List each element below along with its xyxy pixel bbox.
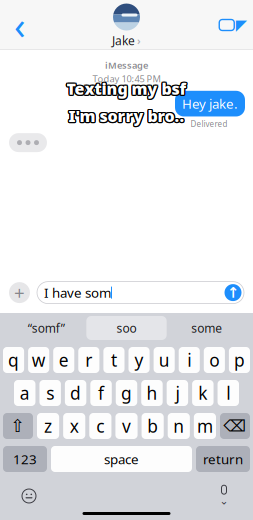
- staticText: o: [209, 348, 219, 371]
- button[interactable]: z: [37, 413, 59, 439]
- staticText: f: [98, 381, 104, 404]
- staticText: x: [70, 414, 79, 437]
- button[interactable]: Shift: [3, 413, 33, 439]
- staticText: I'm sorry bro..: [69, 104, 185, 125]
- staticText: soo: [116, 320, 136, 336]
- staticText: Hey jake.: [182, 95, 238, 112]
- button[interactable]: k: [192, 380, 213, 406]
- button[interactable]: w: [28, 347, 49, 373]
- button[interactable]: 123: [3, 446, 47, 472]
- staticText: ◤: [236, 17, 247, 33]
- button[interactable]: x: [63, 413, 85, 439]
- button[interactable]: FaceTime video call: [213, 3, 253, 47]
- staticText: Today 10:45 PM: [92, 72, 160, 85]
- staticText: I'm sorry bro..: [70, 105, 186, 126]
- staticText: Texting my bsf: [68, 78, 188, 99]
- staticText: m: [197, 414, 213, 437]
- staticText: +: [14, 280, 25, 305]
- button[interactable]: “somf”: [6, 316, 86, 340]
- staticText: Texting my bsf: [65, 77, 185, 98]
- staticText: k: [198, 381, 207, 404]
- button[interactable]: j: [167, 380, 188, 406]
- staticText: r: [85, 348, 92, 371]
- staticText: I have som: [44, 284, 111, 301]
- button[interactable]: o: [204, 347, 225, 373]
- staticText: n: [173, 414, 184, 437]
- staticText: l: [226, 381, 230, 404]
- staticText: I'm sorry bro..: [68, 105, 184, 126]
- button[interactable]: t: [103, 347, 124, 373]
- staticText: space: [104, 450, 139, 468]
- staticText: w: [32, 348, 46, 371]
- button[interactable]: some: [167, 316, 247, 340]
- staticText: I'm sorry bro..: [69, 106, 185, 127]
- button[interactable]: n: [168, 413, 190, 439]
- staticText: p: [234, 348, 245, 371]
- staticText: I'm sorry bro..: [67, 106, 183, 127]
- staticText: s: [46, 381, 54, 404]
- button[interactable]: q: [3, 347, 24, 373]
- button[interactable]: d: [65, 380, 86, 406]
- button[interactable]: f: [90, 380, 112, 406]
- button[interactable]: u: [154, 347, 175, 373]
- button[interactable]: m: [194, 413, 216, 439]
- staticText: iMessage: [105, 59, 148, 71]
- staticText: j: [175, 381, 179, 404]
- staticText: Texting my bsf: [66, 78, 186, 99]
- button[interactable]: Message text field: [37, 282, 244, 304]
- staticText: “somf”: [28, 320, 65, 336]
- button[interactable]: soo: [86, 316, 167, 340]
- staticText: t: [111, 348, 117, 371]
- button[interactable]: r: [78, 347, 99, 373]
- button[interactable]: Add attachment: [9, 280, 30, 305]
- staticText: ›: [137, 33, 141, 48]
- staticText: z: [44, 414, 52, 437]
- button[interactable]: l: [218, 380, 239, 406]
- staticText: some: [191, 320, 222, 336]
- button[interactable]: p: [229, 347, 250, 373]
- button[interactable]: g: [116, 380, 137, 406]
- staticText: g: [121, 381, 132, 404]
- staticText: Texting my bsf: [67, 79, 187, 100]
- staticText: Texting my bsf: [65, 79, 185, 100]
- staticText: q: [8, 348, 19, 371]
- staticText: Texting my bsf: [66, 77, 186, 98]
- staticText: I'm sorry bro..: [68, 104, 184, 125]
- button[interactable]: h: [141, 380, 163, 406]
- button[interactable]: i: [179, 347, 200, 373]
- button[interactable]: a: [14, 380, 35, 406]
- button[interactable]: e: [53, 347, 74, 373]
- staticText: a: [20, 381, 30, 404]
- button[interactable]: s: [39, 380, 61, 406]
- staticText: ‹: [14, 0, 26, 50]
- staticText: i: [187, 348, 191, 371]
- staticText: d: [70, 381, 81, 404]
- button[interactable]: v: [115, 413, 137, 439]
- staticText: ⌄: [219, 495, 228, 507]
- button[interactable]: Emoji keyboard: [12, 481, 46, 511]
- staticText: ⇧: [10, 416, 25, 436]
- staticText: I'm sorry bro..: [67, 105, 183, 126]
- staticText: Jake: [112, 32, 135, 48]
- staticText: h: [146, 381, 157, 404]
- staticText: Texting my bsf: [67, 77, 187, 98]
- button[interactable]: return: [196, 446, 250, 472]
- staticText: return: [203, 450, 243, 468]
- staticText: 123: [13, 450, 37, 468]
- staticText: b: [147, 414, 158, 437]
- button[interactable]: c: [89, 413, 111, 439]
- button[interactable]: Jake, contact details: [112, 1, 141, 48]
- staticText: e: [59, 348, 69, 371]
- staticText: I'm sorry bro..: [68, 106, 184, 128]
- button[interactable]: Back: [0, 3, 40, 47]
- button[interactable]: Delete: [220, 413, 250, 439]
- staticText: v: [122, 414, 131, 437]
- staticText: ↑: [227, 284, 239, 301]
- staticText: I'm sorry bro..: [67, 104, 183, 125]
- staticText: ⌫: [223, 417, 246, 435]
- button[interactable]: y: [128, 347, 150, 373]
- staticText: Texting my bsf: [65, 78, 185, 99]
- button[interactable]: space: [51, 446, 192, 472]
- button[interactable]: b: [142, 413, 164, 439]
- button[interactable]: Dictation: [207, 481, 241, 511]
